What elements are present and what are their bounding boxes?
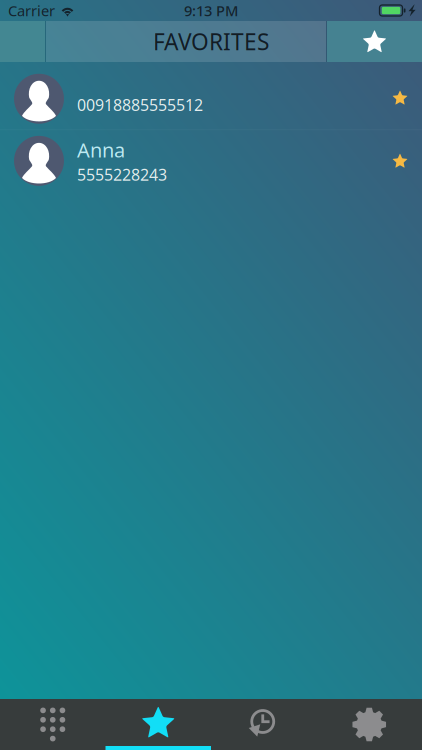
button[interactable]: Settings: [316, 699, 422, 750]
staticText: 5555228243: [77, 164, 167, 185]
button[interactable]: Favorites: [105, 699, 211, 750]
button[interactable]: Recents: [211, 699, 316, 750]
staticText: 00918885555512: [77, 94, 203, 115]
staticText: Carrier: [8, 1, 55, 20]
button[interactable]: Anna: [0, 130, 422, 192]
button[interactable]: Add favorite: [327, 21, 422, 62]
staticText: 9:13 PM: [184, 1, 238, 20]
staticText: FAVORITES: [153, 26, 269, 56]
button[interactable]: 00918885555512: [0, 68, 422, 129]
button[interactable]: Keypad: [0, 699, 105, 750]
staticText: Anna: [77, 136, 125, 163]
